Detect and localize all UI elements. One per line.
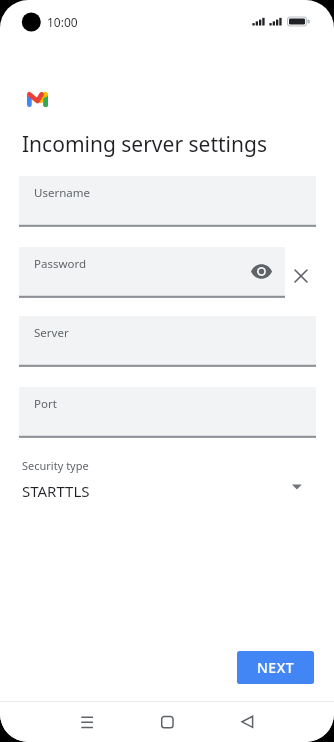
button[interactable]: Port [19, 387, 316, 439]
staticText: Password [34, 256, 87, 272]
staticText: Incoming server settings [22, 130, 267, 159]
button[interactable]: Username [19, 176, 316, 228]
button[interactable]: Clear password [289, 264, 313, 288]
staticText: Security type [22, 458, 89, 473]
button[interactable]: NEXT [237, 651, 314, 684]
button[interactable]: Server [19, 316, 316, 368]
button[interactable]: Show password [251, 264, 272, 279]
staticText: Port [34, 396, 57, 412]
button[interactable]: Home [155, 712, 179, 736]
staticText: 10:00 [47, 14, 78, 30]
staticText: STARTTLS [22, 481, 90, 501]
staticText: NEXT [257, 658, 295, 677]
button[interactable]: Back [235, 712, 259, 736]
staticText: Server [34, 325, 69, 341]
staticText: Username [34, 185, 90, 201]
button[interactable]: Password [19, 247, 285, 299]
button[interactable]: Recent apps [75, 712, 99, 736]
button[interactable]: Open security type dropdown [288, 478, 308, 496]
